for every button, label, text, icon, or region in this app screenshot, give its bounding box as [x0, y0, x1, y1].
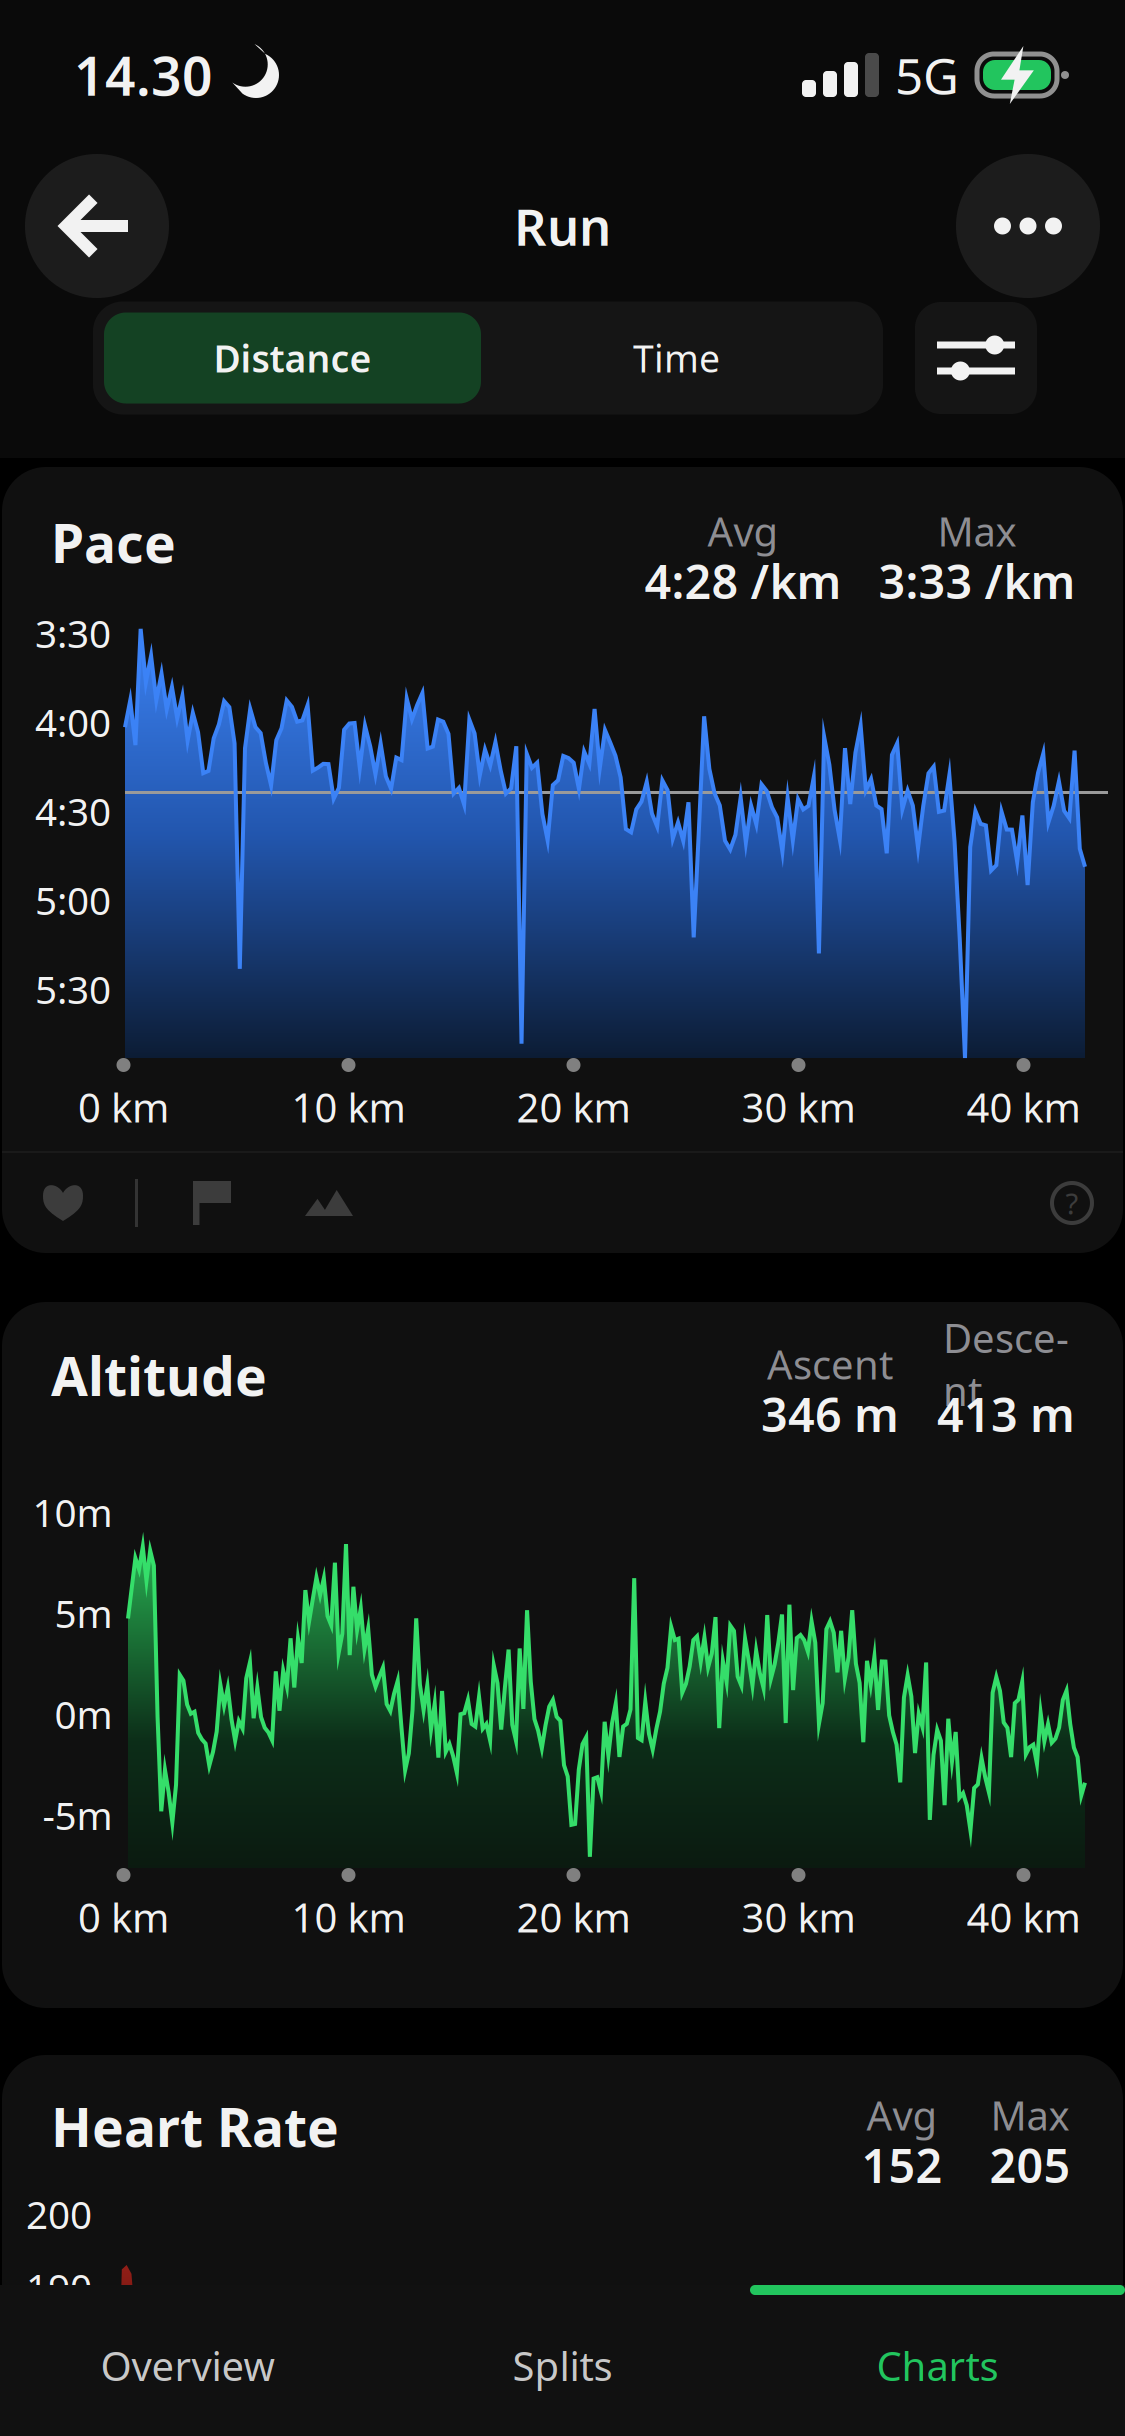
staticText: 3:33 /km	[878, 550, 1075, 612]
staticText: ?	[1065, 1183, 1078, 1222]
button[interactable]: Splits	[375, 2295, 750, 2436]
button[interactable]: Elevation	[289, 1153, 369, 1253]
staticText: Time	[633, 333, 720, 383]
staticText: 0m	[54, 1688, 112, 1740]
staticText: 205	[989, 2134, 1070, 2196]
staticText: Splits	[512, 2339, 612, 2392]
staticText: 14.30	[74, 40, 213, 110]
staticText: 30 km	[741, 1080, 855, 1133]
staticText: -5m	[42, 1789, 112, 1841]
button[interactable]: Back	[25, 154, 169, 298]
button[interactable]: Overview	[0, 2295, 375, 2436]
staticText: Overview	[100, 2339, 274, 2392]
staticText: Altitude	[51, 1340, 267, 1411]
staticText: 4:00	[35, 696, 111, 748]
staticText: 346 m	[761, 1383, 899, 1445]
staticText: 4:28 /km	[644, 550, 841, 612]
staticText: 200	[26, 2188, 92, 2240]
staticText: Pace	[51, 507, 176, 578]
staticText: 5:30	[35, 963, 111, 1015]
staticText: 20 km	[516, 1890, 630, 1943]
staticText: Descent	[943, 1311, 1069, 1417]
staticText: 20 km	[516, 1080, 630, 1133]
staticText: 190	[26, 2261, 92, 2313]
staticText: 10 km	[291, 1890, 405, 1943]
button[interactable]: Time	[481, 312, 872, 403]
button[interactable]: Charts	[750, 2295, 1125, 2436]
button[interactable]: Distance	[104, 312, 481, 403]
button[interactable]: Heart rate	[23, 1153, 103, 1253]
staticText: Ascent	[767, 1337, 893, 1390]
staticText: Charts	[876, 2339, 998, 2392]
staticText: 5:00	[35, 874, 111, 926]
staticText: Avg	[707, 504, 778, 557]
staticText: Run	[514, 192, 611, 260]
staticText: 413 m	[937, 1383, 1075, 1445]
staticText: 10 km	[291, 1080, 405, 1133]
button[interactable]: More options	[956, 154, 1100, 298]
staticText: 4:30	[35, 785, 111, 837]
staticText: 0 km	[78, 1080, 169, 1133]
staticText: 5m	[54, 1587, 112, 1639]
staticText: 40 km	[966, 1890, 1080, 1943]
staticText: Distance	[213, 333, 371, 383]
staticText: 152	[861, 2134, 942, 2196]
staticText: 3:30	[35, 607, 111, 659]
staticText: 40 km	[966, 1080, 1080, 1133]
staticText: Max	[990, 2088, 1069, 2141]
staticText: 0 km	[78, 1890, 169, 1943]
staticText: Avg	[866, 2088, 937, 2141]
staticText: 5G	[895, 42, 959, 108]
button[interactable]: Splits	[172, 1153, 252, 1253]
staticText: 30 km	[741, 1890, 855, 1943]
staticText: Heart Rate	[51, 2091, 339, 2162]
staticText: Max	[937, 504, 1016, 557]
button[interactable]: Help	[1032, 1153, 1112, 1253]
staticText: 10m	[32, 1486, 112, 1538]
button[interactable]: Filter	[915, 302, 1037, 414]
